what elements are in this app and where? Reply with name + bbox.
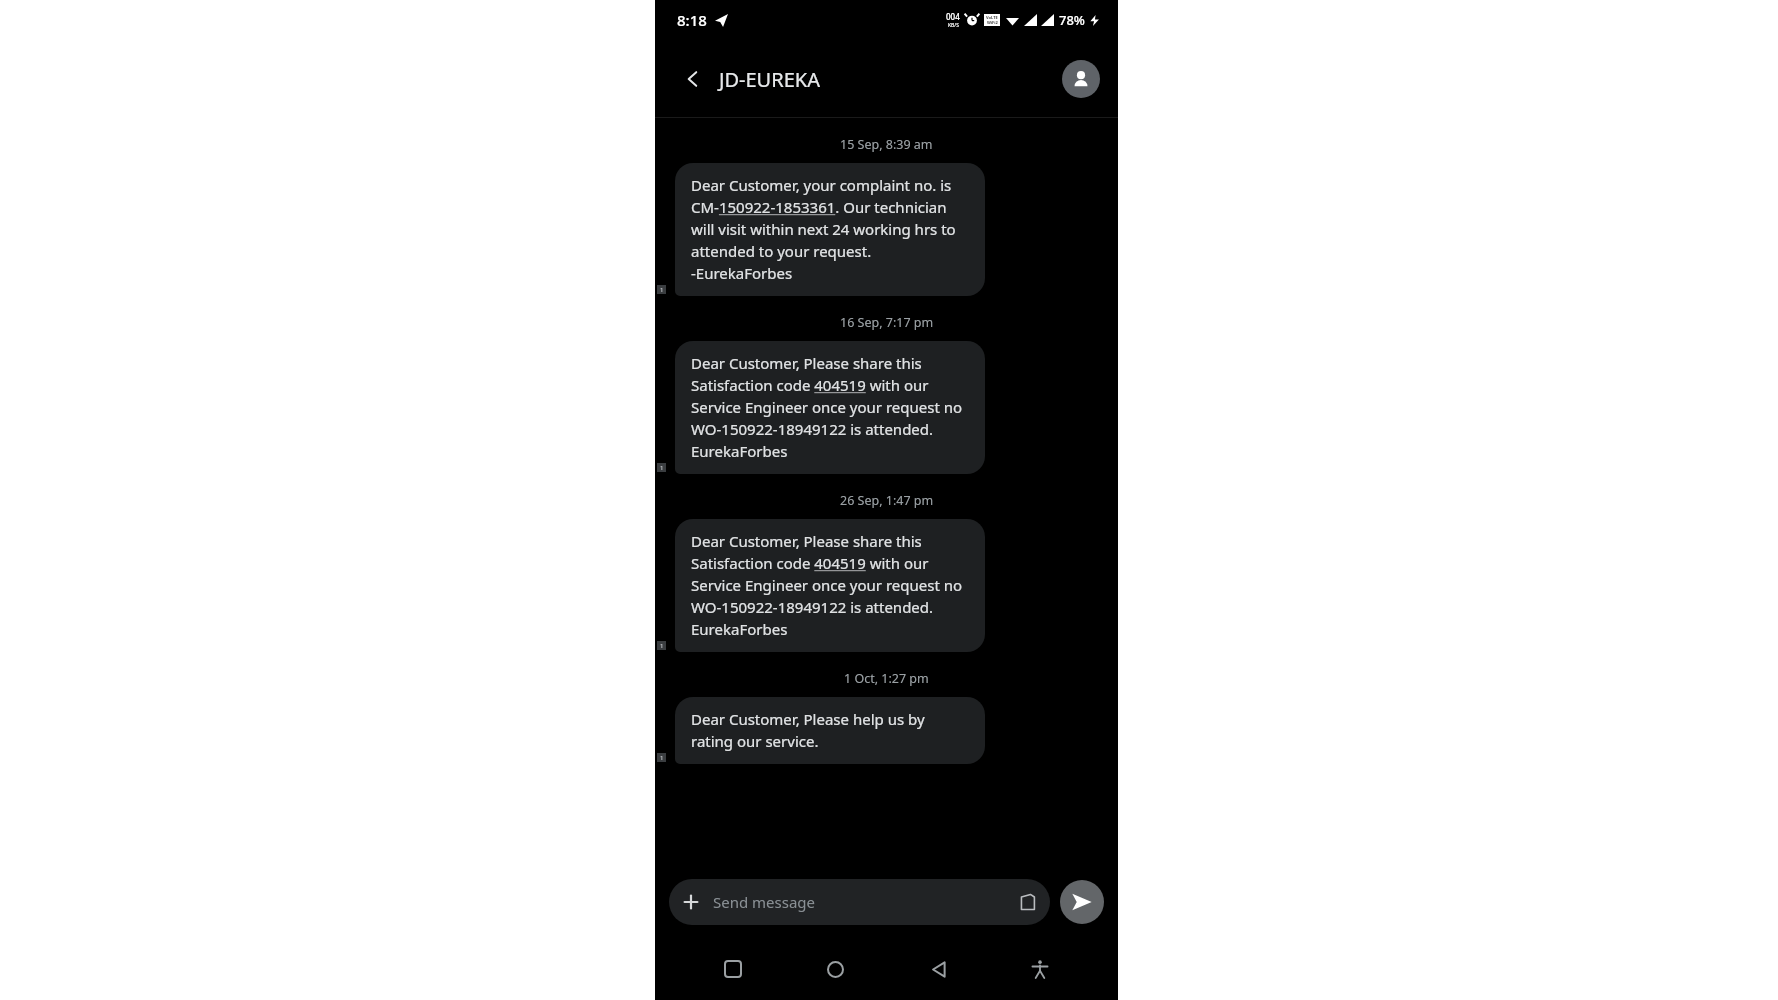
staticText: 78% <box>1059 11 1085 29</box>
button[interactable]: Dear Customer, your complaint no. is CM-… <box>675 163 985 296</box>
button[interactable]: Accessibility <box>1016 945 1064 993</box>
button[interactable]: Back <box>673 59 713 99</box>
staticText: 1 Oct, 1:27 pm <box>844 670 929 687</box>
staticText: 1 <box>660 754 664 762</box>
staticText: 15 Sep, 8:39 am <box>840 136 933 153</box>
staticText: Dear Customer, your complaint no. is CM-… <box>691 175 969 284</box>
button[interactable]: Dear Customer, Please help us by rating … <box>675 697 985 764</box>
button[interactable]: Back <box>914 945 962 993</box>
button[interactable]: Dear Customer, Please share this Satisfa… <box>675 519 985 652</box>
staticText: Dear Customer, Please help us by rating … <box>691 709 969 752</box>
staticText: JD-EUREKA <box>719 66 820 93</box>
button[interactable]: Recents <box>709 945 757 993</box>
staticText: KB/S <box>948 22 959 29</box>
staticText: 1 <box>660 286 664 294</box>
button[interactable]: Home <box>811 945 859 993</box>
staticText: Send message <box>713 892 816 912</box>
staticText: 1 <box>660 642 664 650</box>
button[interactable]: Send message <box>669 879 1050 925</box>
button[interactable]: Contact details <box>1062 60 1100 98</box>
button[interactable]: Dear Customer, Please share this Satisfa… <box>675 341 985 474</box>
staticText: Dear Customer, Please share this Satisfa… <box>691 531 969 640</box>
staticText: 16 Sep, 7:17 pm <box>840 314 934 331</box>
button[interactable]: Send <box>1060 880 1104 924</box>
staticText: 26 Sep, 1:47 pm <box>840 492 934 509</box>
staticText: 8:18 <box>677 10 707 30</box>
staticText: VoLTE <box>986 15 998 20</box>
staticText: 1 <box>660 464 664 472</box>
staticText: 004 <box>946 11 960 22</box>
staticText: WiFi2 <box>987 20 998 25</box>
staticText: Dear Customer, Please share this Satisfa… <box>691 353 969 462</box>
